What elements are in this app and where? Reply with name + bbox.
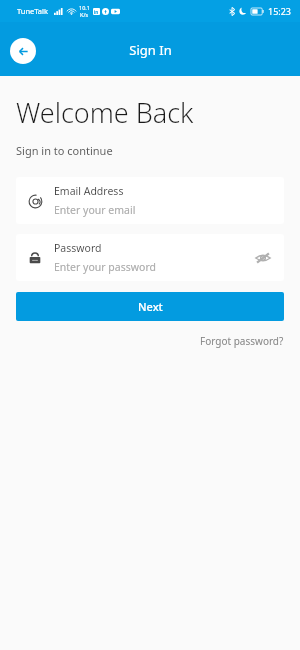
button[interactable]: Next	[16, 292, 284, 321]
staticText: Password	[54, 241, 102, 255]
staticText: Enter your password	[54, 260, 156, 274]
staticText: Sign in to continue	[16, 143, 113, 158]
button[interactable]: Back	[10, 38, 36, 64]
button[interactable]: Password	[16, 234, 284, 281]
button[interactable]: Forgot password?	[200, 332, 284, 350]
button[interactable]: Email Address	[16, 177, 284, 224]
staticText: TuneTalk	[17, 6, 49, 16]
staticText: Welcome Back	[16, 94, 194, 131]
staticText: in	[94, 9, 99, 15]
staticText: Sign In	[129, 41, 172, 59]
staticText: 10.1	[79, 4, 90, 11]
staticText: 15:23	[268, 5, 292, 17]
staticText: K/s	[80, 11, 89, 18]
staticText: Email Address	[54, 184, 124, 198]
staticText: Next	[138, 299, 163, 314]
button[interactable]: Show password	[252, 247, 274, 269]
staticText: Forgot password?	[200, 334, 284, 348]
staticText: Enter your email	[54, 203, 136, 217]
